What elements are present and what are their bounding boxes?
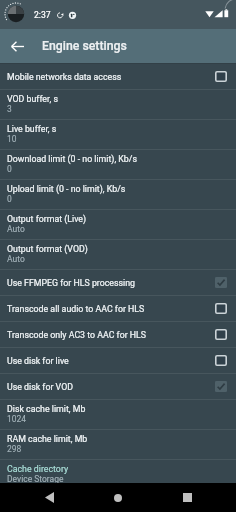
staticText: Auto [7, 224, 25, 234]
button[interactable]: Transcode only AC3 to AAC for HLS [0, 322, 236, 347]
staticText: RAM cache limit, Mb [7, 434, 88, 444]
button[interactable]: Cache directory [0, 460, 236, 483]
staticText: 2:37 [34, 10, 51, 20]
staticText: Download limit (0 - no limit), Kb/s [7, 154, 137, 164]
staticText: Use FFMPEG for HLS processing [7, 278, 215, 288]
button[interactable]: Use FFMPEG for HLS processing [0, 270, 236, 295]
button[interactable]: Home [98, 483, 138, 512]
button[interactable]: Disk cache limit, Mb [0, 400, 236, 429]
button[interactable]: Download limit (0 - no limit), Kb/s [0, 150, 236, 179]
staticText: Disk cache limit, Mb [7, 404, 86, 414]
button[interactable]: Recent apps [167, 483, 207, 512]
button[interactable]: Use disk for live [0, 348, 236, 373]
button[interactable]: Use disk for VOD [0, 374, 236, 399]
staticText: Output format (Live) [7, 214, 87, 224]
button[interactable]: Back [29, 483, 69, 512]
staticText: Upload limit (0 - no limit), Kb/s [7, 184, 126, 194]
staticText: 1024 [7, 414, 27, 424]
button[interactable]: VOD buffer, s [0, 90, 236, 119]
button[interactable]: Upload limit (0 - no limit), Kb/s [0, 180, 236, 209]
button[interactable]: Output format (VOD) [0, 240, 236, 269]
staticText: Output format (VOD) [7, 244, 88, 254]
staticText: Transcode all audio to AAC for HLS [7, 304, 215, 314]
staticText: 0 [7, 194, 12, 204]
staticText: Auto [7, 254, 25, 264]
staticText: 298 [7, 444, 22, 454]
staticText: Use disk for live [7, 356, 215, 366]
staticText: Mobile networks data access [7, 72, 215, 82]
button[interactable]: Live buffer, s [0, 120, 236, 149]
staticText: Transcode only AC3 to AAC for HLS [7, 330, 215, 340]
staticText: Live buffer, s [7, 124, 57, 134]
staticText: Engine settings [42, 39, 127, 53]
staticText: VOD buffer, s [7, 94, 58, 104]
button[interactable]: Output format (Live) [0, 210, 236, 239]
staticText: Device Storage [7, 474, 64, 483]
staticText: 3 [7, 104, 12, 114]
staticText: 0 [7, 164, 12, 174]
button[interactable]: Back [0, 29, 42, 63]
button[interactable]: RAM cache limit, Mb [0, 430, 236, 459]
button[interactable]: Mobile networks data access [0, 64, 236, 89]
staticText: 10 [7, 134, 17, 144]
staticText: Use disk for VOD [7, 382, 215, 392]
staticText: Cache directory [7, 464, 69, 474]
button[interactable]: Transcode all audio to AAC for HLS [0, 296, 236, 321]
